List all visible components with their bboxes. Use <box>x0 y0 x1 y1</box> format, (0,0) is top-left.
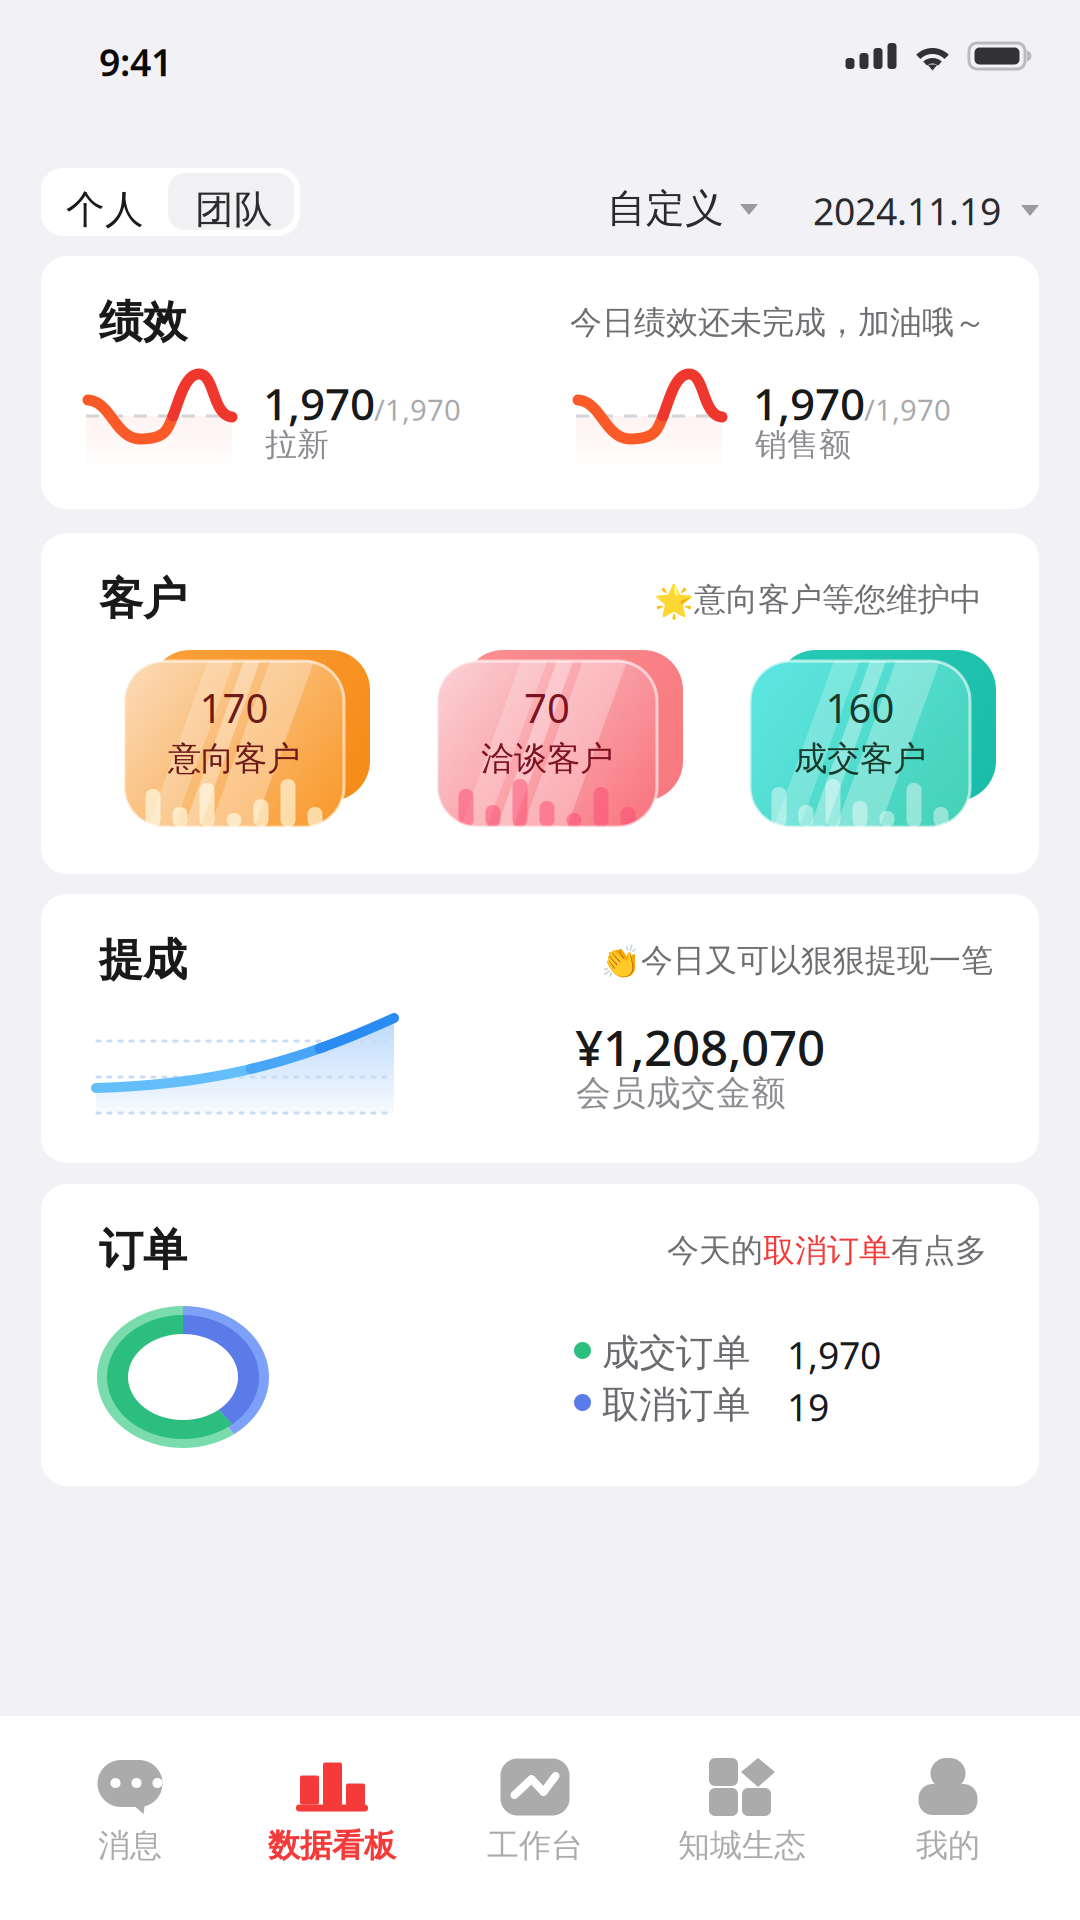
button[interactable]: 2024.11.19 <box>813 186 1039 230</box>
staticText: /1,970 <box>864 390 951 429</box>
staticText: 洽谈客户 <box>481 738 613 779</box>
staticText: 知城生态 <box>678 1826 806 1865</box>
staticText: 🌟意向客户等您维护中 <box>654 580 982 619</box>
staticText: 160 <box>825 681 894 734</box>
staticText: 订单 <box>99 1223 187 1277</box>
staticText: 意向客户 <box>168 738 300 779</box>
button[interactable]: 我的 <box>846 1716 1050 1920</box>
staticText: 销售额 <box>755 425 851 464</box>
staticText: 取消订单 <box>763 1231 891 1270</box>
staticText: 个人 <box>66 186 144 233</box>
staticText: 170 <box>199 681 268 734</box>
staticText: 数据看板 <box>268 1826 396 1865</box>
staticText: 今日绩效还未完成，加油哦～ <box>570 303 986 342</box>
staticText: 成交客户 <box>794 738 926 779</box>
staticText: 👏今日又可以狠狠提现一笔 <box>601 941 993 980</box>
staticText: 有点多 <box>891 1231 987 1270</box>
button[interactable]: 数据看板 <box>230 1716 434 1920</box>
staticText: 1,970 <box>787 1330 881 1380</box>
button[interactable]: 工作台 <box>433 1716 637 1920</box>
staticText: 1,970 <box>263 374 375 432</box>
staticText: 工作台 <box>487 1826 583 1865</box>
button[interactable]: 知城生态 <box>640 1716 844 1920</box>
button[interactable]: 消息 <box>28 1716 232 1920</box>
staticText: 取消订单 <box>602 1382 750 1428</box>
staticText: 成交订单 <box>602 1330 750 1376</box>
staticText: 9:41 <box>99 37 172 87</box>
staticText: 19 <box>787 1382 829 1432</box>
staticText: 今天的 <box>667 1231 763 1270</box>
button[interactable]: 自定义 <box>607 185 758 229</box>
staticText: 自定义 <box>607 185 724 232</box>
staticText: 提成 <box>99 933 187 987</box>
button[interactable]: 团队 <box>168 173 294 230</box>
staticText: 拉新 <box>265 425 329 464</box>
staticText: 消息 <box>98 1826 162 1865</box>
staticText: /1,970 <box>374 390 461 429</box>
staticText: 2024.11.19 <box>813 186 1001 236</box>
staticText: ¥1,208,070 <box>575 1014 825 1079</box>
button[interactable]: 个人 <box>41 168 300 236</box>
staticText: 1,970 <box>753 374 865 432</box>
staticText: 团队 <box>195 186 273 233</box>
staticText: 我的 <box>916 1826 980 1865</box>
staticText: 客户 <box>99 572 187 626</box>
staticText: 会员成交金额 <box>576 1072 786 1115</box>
staticText: 绩效 <box>99 295 187 349</box>
staticText: 70 <box>524 681 570 734</box>
